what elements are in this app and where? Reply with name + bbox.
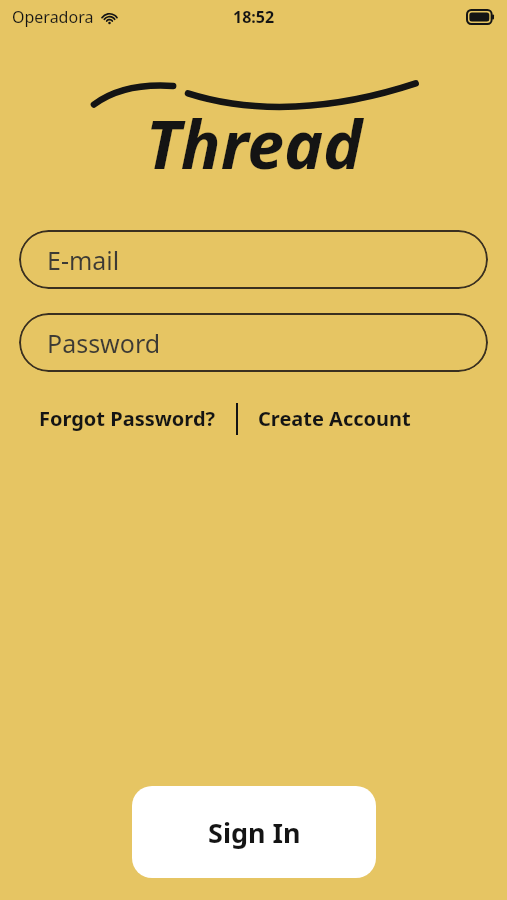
staticText: Sign In [208, 814, 301, 851]
staticText: Operadora [12, 6, 94, 28]
button[interactable]: Password [19, 313, 488, 372]
button[interactable]: E-mail [19, 230, 488, 289]
button[interactable]: Forgot Password? [19, 397, 236, 440]
staticText: Forgot Password? [39, 405, 216, 432]
button[interactable]: Sign In [132, 786, 376, 878]
staticText: Password [47, 326, 161, 360]
staticText: Thread [89, 98, 419, 188]
button[interactable]: Create Account [238, 397, 431, 440]
staticText: Create Account [258, 405, 411, 432]
staticText: 18:52 [233, 6, 275, 28]
staticText: E-mail [47, 243, 120, 277]
